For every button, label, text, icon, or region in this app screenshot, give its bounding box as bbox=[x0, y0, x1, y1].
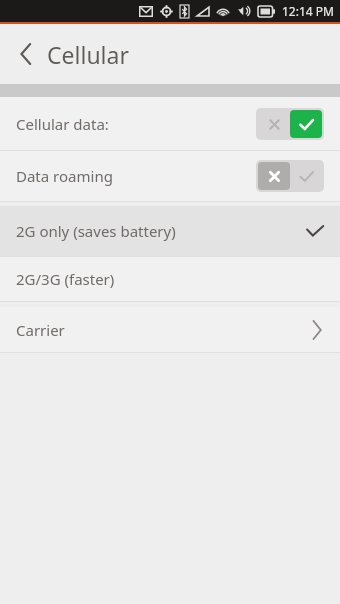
staticText: 2G/3G (faster) bbox=[16, 269, 115, 289]
button[interactable]: Carrier bbox=[0, 307, 340, 352]
staticText: 2G only (saves battery) bbox=[16, 221, 176, 241]
button[interactable]: Cellular data: bbox=[0, 97, 340, 150]
staticText: Data roaming bbox=[16, 166, 113, 186]
staticText: Carrier bbox=[16, 320, 65, 340]
button[interactable]: Enabled bbox=[256, 108, 324, 140]
button[interactable]: Disabled bbox=[256, 160, 324, 192]
button[interactable]: 2G/3G (faster) bbox=[0, 257, 340, 301]
staticText: Cellular bbox=[47, 39, 129, 70]
button[interactable]: 2G only (saves battery) bbox=[0, 206, 340, 256]
button[interactable]: Data roaming bbox=[0, 151, 340, 201]
staticText: 12:14 PM bbox=[282, 3, 334, 19]
staticText: Cellular data: bbox=[16, 114, 109, 134]
button[interactable]: Back to settings bbox=[0, 24, 340, 84]
